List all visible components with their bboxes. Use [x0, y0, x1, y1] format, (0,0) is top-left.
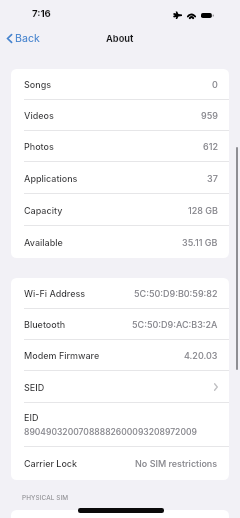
staticText: No SIM restrictions [135, 458, 218, 469]
staticText: PHYSICAL SIM [22, 494, 69, 502]
staticText: 612 [203, 141, 218, 152]
staticText: Videos [24, 110, 54, 121]
button[interactable]: Carrier Lock [11, 447, 229, 480]
staticText: About [106, 33, 134, 44]
staticText: Modem Firmware [24, 350, 100, 361]
staticText: 89049032007088882600093208972009 [24, 427, 197, 437]
button[interactable]: Modem Firmware [11, 340, 229, 371]
button[interactable]: Wi-Fi Address [11, 278, 229, 309]
button[interactable]: Bluetooth [11, 309, 229, 340]
staticText: 5C:50:D9:AC:B3:2A [132, 319, 218, 330]
staticText: 128 GB [188, 205, 218, 216]
button[interactable]: Back [0, 29, 44, 48]
button[interactable]: Songs [11, 69, 229, 100]
staticText: 37 [207, 173, 218, 184]
staticText: EID [24, 412, 39, 423]
staticText: Applications [24, 173, 78, 184]
staticText: 7:16 [32, 8, 51, 20]
button[interactable]: Videos [11, 100, 229, 131]
staticText: Bluetooth [24, 319, 66, 330]
button[interactable]: Available [11, 226, 229, 258]
button[interactable]: Capacity [11, 194, 229, 226]
staticText: 35.11 GB [182, 237, 218, 248]
staticText: Songs [24, 79, 52, 90]
button[interactable]: Applications [11, 162, 229, 194]
staticText: Available [24, 237, 63, 248]
staticText: Wi-Fi Address [24, 288, 86, 299]
button[interactable]: SEID [11, 371, 229, 403]
staticText: 0 [212, 79, 218, 90]
staticText: Photos [24, 141, 54, 152]
staticText: 959 [201, 110, 218, 121]
staticText: Carrier Lock [24, 458, 78, 469]
button[interactable]: EID [11, 403, 229, 447]
staticText: Back [15, 32, 40, 45]
staticText: 5C:50:D9:B0:59:82 [134, 288, 218, 299]
staticText: 4.20.03 [184, 350, 218, 361]
staticText: SEID [24, 382, 45, 393]
button[interactable]: Photos [11, 131, 229, 162]
staticText: Capacity [24, 205, 63, 216]
